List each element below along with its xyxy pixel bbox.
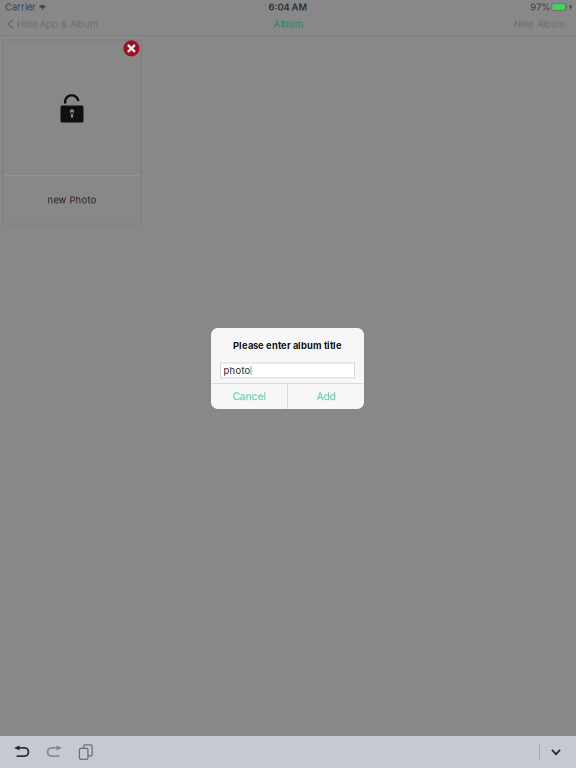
- staticText: Album: [273, 18, 302, 30]
- button[interactable]: Paste: [77, 743, 94, 760]
- staticText: Hide App & Album: [17, 18, 98, 30]
- staticText: Carrier: [5, 1, 36, 13]
- button[interactable]: Redo: [46, 745, 62, 758]
- button[interactable]: Cancel: [211, 384, 287, 409]
- staticText: Please enter album title: [233, 340, 342, 351]
- button[interactable]: Undo: [14, 745, 30, 758]
- staticText: Cancel: [232, 390, 265, 403]
- staticText: New Album: [514, 18, 565, 30]
- button[interactable]: Add: [288, 384, 364, 409]
- button[interactable]: New Album: [503, 14, 576, 34]
- button[interactable]: Hide App & Album: [0, 14, 106, 34]
- staticText: photo: [223, 365, 250, 376]
- staticText: Add: [316, 390, 335, 403]
- staticText: new Photo: [47, 194, 96, 206]
- button[interactable]: new Photo: [3, 40, 141, 224]
- staticText: 97%: [530, 1, 550, 13]
- button[interactable]: Hide keyboard: [551, 749, 561, 755]
- staticText: 6:04 AM: [268, 1, 307, 13]
